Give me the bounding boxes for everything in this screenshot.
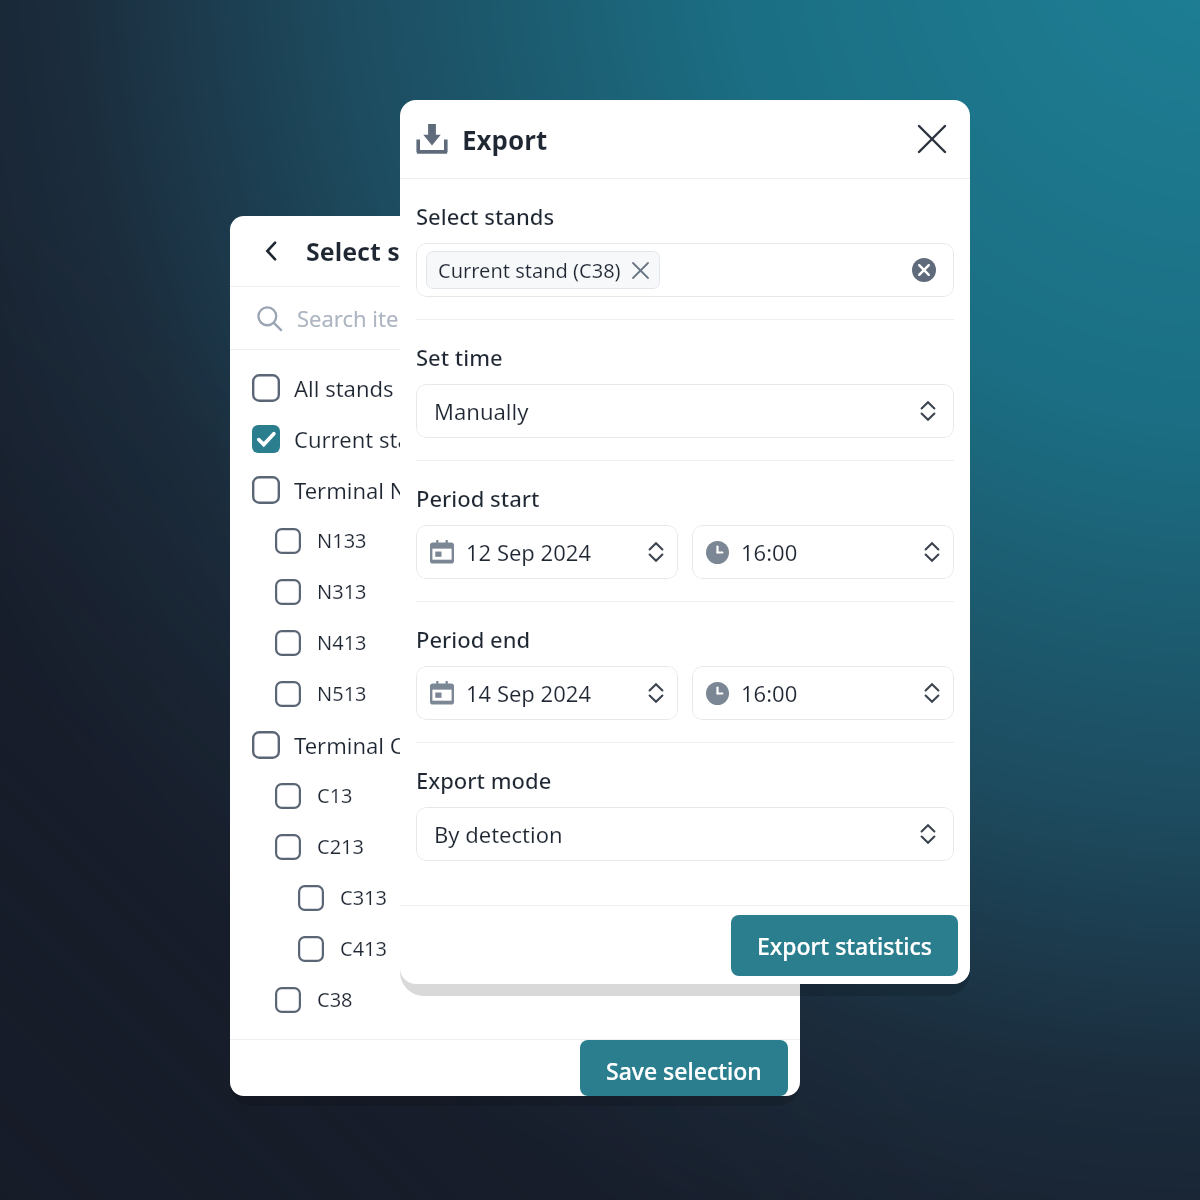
staticText: All stands xyxy=(294,373,394,403)
button[interactable]: C413 xyxy=(230,923,800,974)
staticText: 16:00 xyxy=(741,537,798,567)
button[interactable]: Back xyxy=(254,233,290,269)
staticText: Terminal N xyxy=(294,475,407,505)
button[interactable]: Terminal N xyxy=(230,464,800,515)
button[interactable]: N513 xyxy=(230,668,800,719)
button[interactable]: 16:00 xyxy=(692,666,954,720)
button[interactable]: Save selection xyxy=(580,1040,788,1096)
button[interactable]: Current stand (C38) xyxy=(416,243,954,297)
staticText: 16:00 xyxy=(741,678,798,708)
button[interactable]: All stands xyxy=(230,362,800,413)
staticText: 14 Sep 2024 xyxy=(466,678,591,708)
button[interactable]: Current stand (C38) xyxy=(426,251,660,289)
staticText: Period end xyxy=(416,624,531,654)
staticText: Search items xyxy=(297,303,430,333)
button[interactable]: By detection xyxy=(416,807,954,861)
button[interactable]: Clear xyxy=(908,254,940,286)
staticText: Select stands xyxy=(306,234,471,268)
staticText: C213 xyxy=(317,833,364,860)
staticText: Terminal C xyxy=(294,730,404,760)
button[interactable]: N313 xyxy=(230,566,800,617)
staticText: By detection xyxy=(434,819,563,849)
staticText: Export xyxy=(462,122,548,157)
staticText: C13 xyxy=(317,782,353,809)
staticText: N513 xyxy=(317,680,367,707)
button[interactable]: Current stand xyxy=(230,413,800,464)
staticText: 12 Sep 2024 xyxy=(466,537,591,567)
staticText: N413 xyxy=(317,629,367,656)
staticText: Select stands xyxy=(416,201,555,231)
button[interactable]: N413 xyxy=(230,617,800,668)
staticText: Current stand (C38) xyxy=(438,257,621,284)
staticText: Period start xyxy=(416,483,540,513)
staticText: C313 xyxy=(340,884,387,911)
staticText: Export statistics xyxy=(757,930,932,961)
button[interactable]: 16:00 xyxy=(692,525,954,579)
button[interactable]: 12 Sep 2024 xyxy=(416,525,678,579)
button[interactable]: C38 xyxy=(230,974,800,1025)
staticText: Manually xyxy=(434,396,529,426)
button[interactable]: C313 xyxy=(230,872,800,923)
staticText: N133 xyxy=(317,527,367,554)
staticText: Save selection xyxy=(606,1055,762,1081)
staticText: N313 xyxy=(317,578,367,605)
staticText: Current stand xyxy=(294,424,437,454)
button[interactable]: N133 xyxy=(230,515,800,566)
button[interactable]: Search items xyxy=(256,287,800,349)
button[interactable]: Terminal C xyxy=(230,719,800,770)
button[interactable]: Close xyxy=(912,119,952,159)
staticText: Export mode xyxy=(416,765,552,795)
staticText: C38 xyxy=(317,986,353,1013)
staticText: C413 xyxy=(340,935,387,962)
button[interactable]: C213 xyxy=(230,821,800,872)
button[interactable]: Export statistics xyxy=(731,915,958,976)
button[interactable]: C13 xyxy=(230,770,800,821)
button[interactable]: 14 Sep 2024 xyxy=(416,666,678,720)
button[interactable]: Manually xyxy=(416,384,954,438)
staticText: Set time xyxy=(416,342,503,372)
